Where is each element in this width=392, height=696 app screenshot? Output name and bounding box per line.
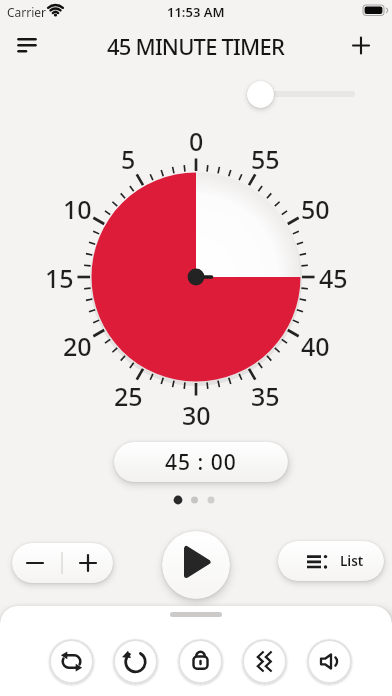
button[interactable] bbox=[162, 531, 230, 599]
staticText: 25 bbox=[114, 379, 143, 412]
button[interactable] bbox=[307, 639, 352, 684]
staticText: List bbox=[340, 552, 364, 570]
staticText: 55 bbox=[251, 142, 280, 175]
staticText: Carrier bbox=[7, 4, 47, 20]
staticText: 0 bbox=[189, 124, 204, 157]
button[interactable] bbox=[242, 639, 287, 684]
button[interactable] bbox=[12, 543, 62, 583]
staticText: 20 bbox=[63, 329, 92, 362]
staticText: 5 bbox=[121, 142, 136, 175]
staticText: 40 bbox=[301, 329, 330, 362]
staticText: 15 bbox=[45, 261, 74, 294]
staticText: 10 bbox=[63, 192, 92, 225]
button[interactable] bbox=[10, 31, 46, 59]
staticText: 45 : 00 bbox=[165, 448, 237, 477]
button[interactable] bbox=[49, 639, 94, 684]
button[interactable] bbox=[347, 31, 377, 61]
staticText: 30 bbox=[182, 398, 211, 431]
staticText: 45 bbox=[319, 261, 348, 294]
button[interactable] bbox=[113, 639, 158, 684]
staticText: 35 bbox=[251, 379, 280, 412]
staticText: 11:53 AM bbox=[167, 3, 225, 21]
button[interactable] bbox=[178, 639, 223, 684]
staticText: 45 MINUTE TIMER bbox=[107, 31, 285, 61]
button[interactable]: List bbox=[278, 541, 384, 581]
staticText: 50 bbox=[301, 192, 330, 225]
button[interactable] bbox=[63, 543, 113, 583]
button[interactable] bbox=[247, 81, 274, 108]
button[interactable]: 45 : 00 bbox=[114, 442, 288, 482]
